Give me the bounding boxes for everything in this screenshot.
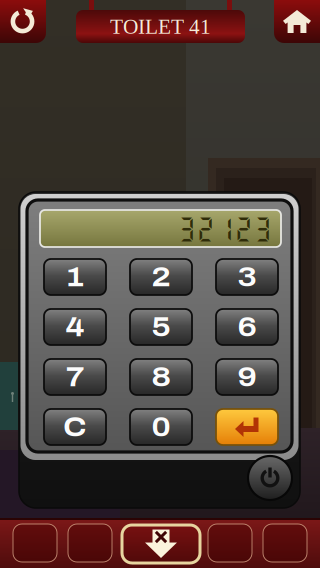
button[interactable]: 8 [130, 359, 192, 395]
button[interactable]: Empty inventory slot [68, 524, 112, 562]
button[interactable]: Empty inventory slot [208, 524, 252, 562]
button[interactable]: C [44, 409, 106, 445]
button[interactable]: 4 [44, 309, 106, 345]
staticText: 8 [151, 362, 170, 392]
button[interactable]: Enter [216, 409, 278, 445]
staticText: 32123 [177, 213, 272, 244]
staticText: C [63, 412, 87, 442]
button[interactable]: 5 [130, 309, 192, 345]
button[interactable]: 3 [216, 259, 278, 295]
staticText: 7 [66, 362, 84, 392]
staticText: 4 [65, 312, 84, 342]
staticText: 3 [237, 262, 256, 292]
button[interactable]: 7 [44, 359, 106, 395]
button[interactable]: Stow inventory [122, 525, 200, 563]
button[interactable]: Empty inventory slot [263, 524, 307, 562]
staticText: 6 [237, 312, 256, 342]
button[interactable]: Power [248, 456, 292, 500]
button[interactable]: 1 [44, 259, 106, 295]
staticText: TOILET 41 [110, 15, 211, 38]
staticText: 5 [151, 312, 170, 342]
button[interactable]: Restart [0, 0, 46, 43]
button[interactable]: 0 [130, 409, 192, 445]
staticText: 1 [66, 262, 84, 292]
button[interactable]: 9 [216, 359, 278, 395]
staticText: 2 [151, 262, 170, 292]
button[interactable]: Empty inventory slot [13, 524, 57, 562]
button[interactable]: 6 [216, 309, 278, 345]
staticText: 9 [237, 362, 256, 392]
staticText: 0 [151, 412, 170, 442]
button[interactable]: Home [274, 0, 320, 43]
button[interactable]: 2 [130, 259, 192, 295]
